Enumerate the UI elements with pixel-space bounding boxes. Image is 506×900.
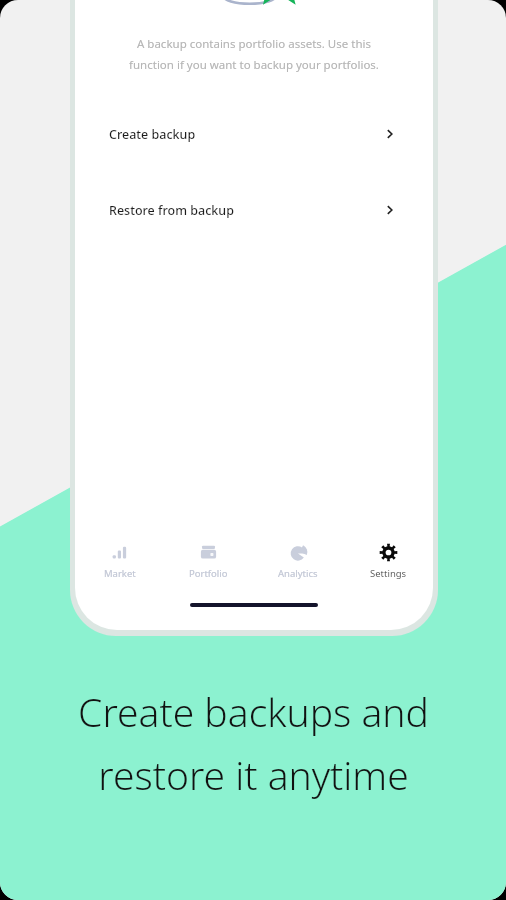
other: Market xyxy=(110,543,129,562)
other: Portfolio xyxy=(199,543,218,562)
staticText: Analytics xyxy=(278,567,318,580)
button[interactable]: Settings xyxy=(343,539,433,584)
staticText: Settings xyxy=(370,567,407,580)
staticText: Create backup xyxy=(109,126,196,143)
staticText: A backup contains portfolio assets. Use … xyxy=(137,36,371,52)
button[interactable]: Restore from backup xyxy=(93,178,415,242)
staticText: function if you want to backup your port… xyxy=(129,57,379,73)
other: Settings xyxy=(379,543,398,562)
button[interactable]: Analytics xyxy=(253,539,343,584)
staticText: Restore from backup xyxy=(109,202,234,219)
button[interactable]: Create backup xyxy=(93,102,415,166)
staticText: restore it anytime xyxy=(98,748,409,801)
staticText: Create backups and xyxy=(78,685,429,738)
staticText: Portfolio xyxy=(189,567,228,580)
button[interactable]: Portfolio xyxy=(164,539,253,584)
other: Analytics xyxy=(289,543,308,562)
button[interactable]: Market xyxy=(75,539,164,584)
staticText: Market xyxy=(104,567,136,580)
